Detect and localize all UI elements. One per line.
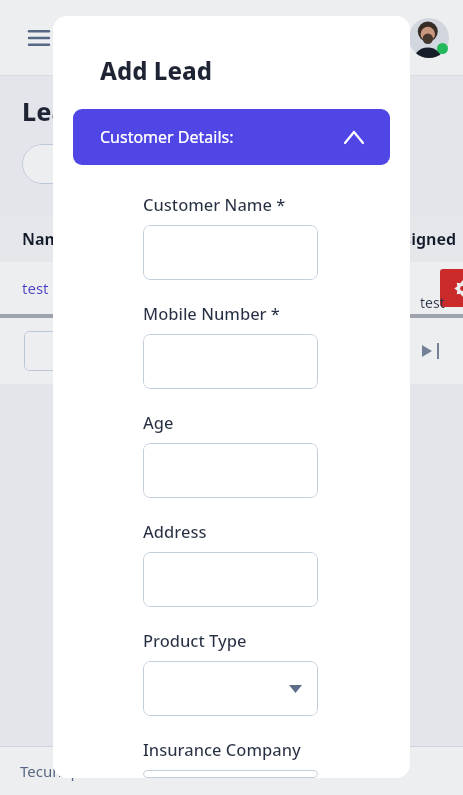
button[interactable]: test <box>22 278 49 298</box>
button[interactable] <box>143 770 318 778</box>
staticText: Name <box>22 228 70 250</box>
button[interactable] <box>143 552 318 607</box>
button[interactable] <box>143 443 318 498</box>
button[interactable] <box>143 334 318 389</box>
button[interactable] <box>143 661 318 716</box>
staticText: Leads <box>22 94 96 128</box>
staticText: Product Type <box>143 629 247 651</box>
staticText: test <box>420 293 445 312</box>
button[interactable]: Profile <box>409 18 449 58</box>
button[interactable]: Previous page <box>24 331 58 371</box>
staticText: Age <box>143 411 174 433</box>
button[interactable]: Settings <box>440 269 463 307</box>
staticText: Mobile Number * <box>143 302 280 324</box>
staticText: Customer Details: <box>100 126 234 148</box>
staticText: Assigned <box>384 228 457 250</box>
staticText: Add Lead <box>100 54 212 87</box>
button[interactable] <box>143 225 318 280</box>
staticText: Address <box>143 520 207 542</box>
staticText: Insurance Company <box>143 738 301 760</box>
button[interactable] <box>22 144 232 184</box>
staticText: Tecunique <box>20 761 93 781</box>
button[interactable]: Customer Details: <box>73 109 390 165</box>
button[interactable]: Menu <box>22 21 56 55</box>
staticText: Customer Name * <box>143 193 286 215</box>
